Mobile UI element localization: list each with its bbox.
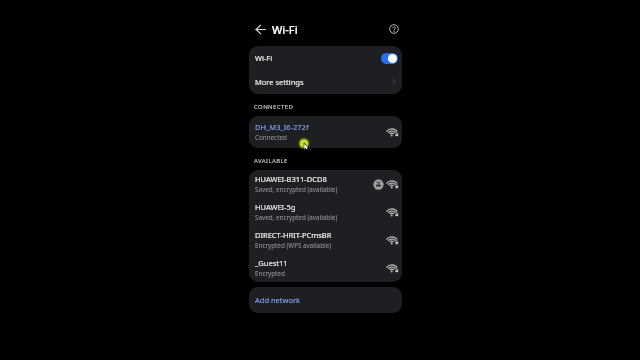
staticText: Encrypted — [255, 269, 285, 278]
button[interactable]: Wi-Fi toggle — [381, 53, 398, 64]
button[interactable]: _Guest11 — [249, 254, 402, 282]
button[interactable]: DIRECT-HRIT-PCmsBR — [249, 226, 402, 254]
button[interactable]: HUAWEI-B311-DCD8 — [249, 170, 402, 198]
staticText: _Guest11 — [255, 258, 288, 268]
staticText: DIRECT-HRIT-PCmsBR — [255, 230, 332, 240]
staticText: Wi-Fi — [255, 53, 273, 63]
staticText: AVAILABLE — [254, 157, 288, 165]
button[interactable]: Add network — [249, 287, 402, 313]
staticText: Saved, encrypted (available) — [255, 213, 338, 222]
staticText: HUAWEI-B311-DCD8 — [255, 174, 327, 184]
staticText: DH_M3_I6-272f — [255, 122, 309, 132]
button[interactable]: More settings — [249, 70, 402, 94]
staticText: Saved, encrypted (available) — [255, 185, 338, 194]
button[interactable]: Wi-Fi — [249, 46, 402, 70]
staticText: Add network — [255, 295, 301, 305]
button[interactable]: DH_M3_I6-272f — [249, 116, 402, 148]
staticText: Encrypted (WPS available) — [255, 241, 332, 250]
staticText: HUAWEI-5g — [255, 202, 296, 212]
button[interactable]: HUAWEI-5g — [249, 198, 402, 226]
staticText: More settings — [255, 77, 304, 87]
staticText: CONNECTED — [254, 103, 294, 111]
button[interactable]: Help — [383, 18, 405, 40]
staticText: Connected — [255, 133, 287, 142]
button[interactable]: Back — [249, 18, 271, 40]
staticText: Wi-Fi — [272, 22, 298, 37]
